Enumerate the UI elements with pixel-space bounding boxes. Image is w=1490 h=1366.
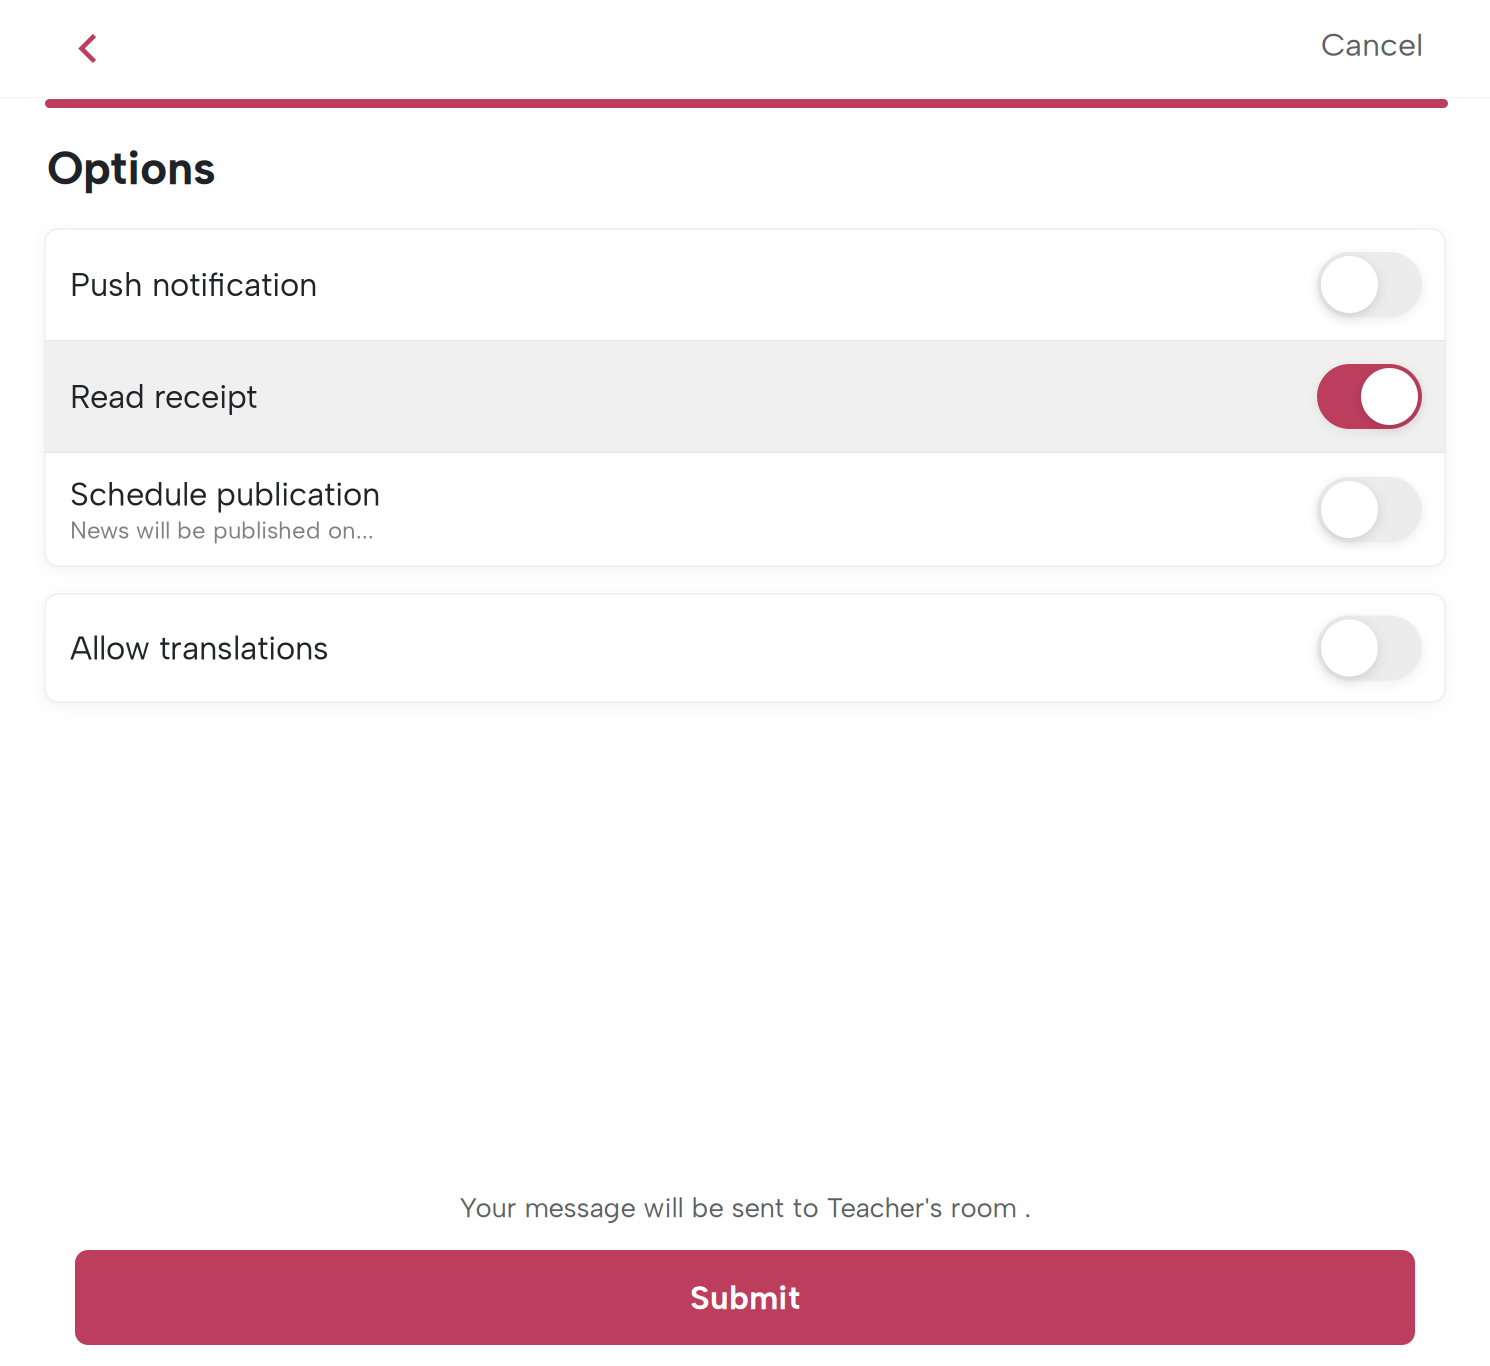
staticText: News will be published on... <box>70 516 374 544</box>
staticText: Your message will be sent to Teacher's r… <box>459 1191 1030 1224</box>
staticText: Allow translations <box>70 628 329 668</box>
staticText: Push notification <box>70 265 317 304</box>
button[interactable]: Schedule publication <box>45 453 1445 566</box>
button[interactable]: Allow translations <box>45 594 1445 702</box>
button[interactable]: Back <box>51 3 125 93</box>
staticText: Options <box>47 140 216 196</box>
staticText: Submit <box>690 1277 800 1317</box>
staticText: Read receipt <box>70 377 257 416</box>
button[interactable]: Cancel <box>1307 3 1437 93</box>
staticText: Cancel <box>1321 25 1423 64</box>
button[interactable]: Submit <box>75 1250 1415 1345</box>
button[interactable]: Push notification <box>45 229 1445 340</box>
button[interactable]: Read receipt <box>45 341 1445 452</box>
staticText: Schedule publication <box>70 474 380 514</box>
